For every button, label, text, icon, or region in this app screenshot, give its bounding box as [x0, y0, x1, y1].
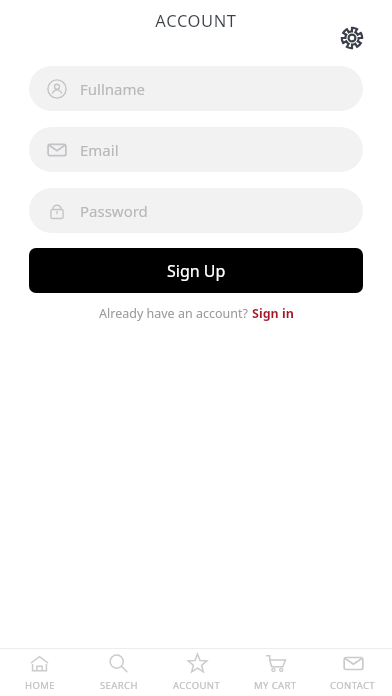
staticText: HOME — [25, 679, 55, 692]
staticText: ACCOUNT — [173, 679, 221, 692]
button[interactable]: HOME — [0, 649, 79, 696]
button[interactable]: Settings — [336, 22, 368, 54]
button[interactable]: Sign in — [252, 305, 294, 322]
button[interactable]: Sign Up — [29, 248, 363, 293]
button[interactable]: Fullname — [29, 66, 363, 111]
staticText: Fullname — [80, 79, 145, 99]
staticText: SEARCH — [100, 679, 138, 692]
button[interactable]: CONTACT — [314, 649, 392, 696]
staticText: ACCOUNT — [155, 9, 237, 31]
staticText: Already have an account? — [99, 305, 252, 322]
staticText: Password — [80, 201, 148, 221]
staticText: Sign Up — [167, 260, 226, 282]
staticText: CONTACT — [330, 679, 376, 692]
button[interactable]: MY CART — [236, 649, 314, 696]
staticText: Sign in — [252, 305, 294, 322]
staticText: MY CART — [254, 679, 297, 692]
staticText: Email — [80, 140, 119, 160]
button[interactable]: SEARCH — [79, 649, 158, 696]
button[interactable]: Email — [29, 127, 363, 172]
button[interactable]: ACCOUNT — [158, 649, 236, 696]
button[interactable]: Password — [29, 188, 363, 233]
